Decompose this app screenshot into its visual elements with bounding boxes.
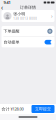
staticText: 立即提交 [35, 106, 51, 111]
staticText: ‹ [1, 3, 3, 12]
button[interactable]: 下单提醒 [1, 26, 54, 36]
staticText: 138 0013 8000 [13, 17, 37, 20]
staticText: 下单提醒 [3, 29, 19, 34]
staticText: › [51, 12, 53, 20]
staticText: 自动接单 [3, 40, 19, 45]
staticText: 合计 ¥128.00 [1, 106, 23, 112]
staticText: 9:41 [3, 0, 10, 5]
button[interactable]: 自动接单 [1, 37, 54, 47]
button[interactable]: 张小明 [1, 10, 54, 22]
button[interactable]: 立即提交 [31, 105, 54, 113]
staticText: 张小明 [13, 11, 25, 16]
staticText: 订单详情 [20, 5, 36, 10]
button[interactable]: Back [0, 5, 3, 10]
